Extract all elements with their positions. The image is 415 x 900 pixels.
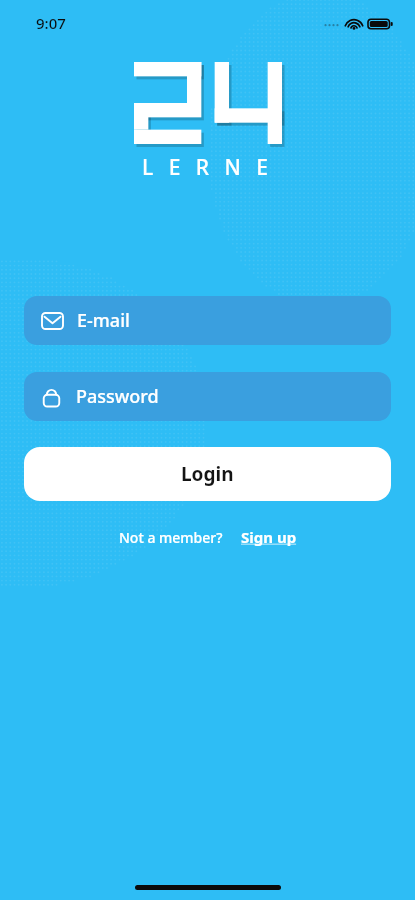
- staticText: Password: [76, 384, 159, 409]
- other: E-mail: [41, 312, 64, 330]
- button[interactable]: E-mail: [24, 296, 391, 345]
- button[interactable]: Sign up: [241, 527, 297, 547]
- button[interactable]: Login: [24, 447, 391, 501]
- staticText: L E R N E: [142, 153, 274, 182]
- staticText: E-mail: [77, 308, 130, 333]
- other: Password: [41, 386, 62, 408]
- staticText: 9:07: [36, 13, 66, 33]
- button[interactable]: Password: [24, 372, 391, 421]
- staticText: Login: [181, 461, 234, 487]
- staticText: Not a member?: [119, 528, 223, 547]
- staticText: Sign up: [241, 527, 297, 547]
